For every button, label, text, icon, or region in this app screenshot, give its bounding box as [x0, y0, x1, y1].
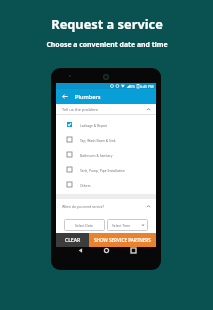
staticText: Select Date	[75, 223, 93, 228]
button[interactable]: Others	[56, 177, 156, 192]
button[interactable]: Tap, Wash Basin & Sink	[56, 132, 156, 147]
button[interactable]: Select Date	[64, 219, 105, 231]
button[interactable]: Tank, Pump, Pipe Installation	[56, 162, 156, 177]
button[interactable]: Tell us the problem	[56, 104, 156, 114]
button[interactable]: Bathroom & Sanitary	[56, 147, 156, 162]
button[interactable]: Recents	[127, 244, 140, 257]
staticText: Request a service	[51, 15, 163, 32]
staticText: Plumbers	[75, 93, 101, 101]
staticText: When do you need service?	[62, 204, 105, 208]
button[interactable]: Leakage & Repair	[56, 117, 156, 132]
staticText: CLEAR	[65, 237, 81, 244]
staticText: Select Time	[112, 223, 131, 228]
staticText: Tap, Wash Basin & Sink	[80, 138, 116, 142]
button[interactable]: Select Time	[107, 219, 148, 231]
staticText: 6:45 PM	[140, 84, 154, 89]
button[interactable]: SHOW SERVICE PARTNERS	[89, 233, 156, 247]
button[interactable]: Back	[74, 244, 87, 257]
staticText: Bathroom & Sanitary	[80, 153, 113, 157]
staticText: Tank, Pump, Pipe Installation	[80, 168, 125, 172]
button[interactable]: CLEAR	[56, 233, 89, 247]
button[interactable]: When do you need service?	[56, 199, 156, 213]
staticText: SHOW SERVICE PARTNERS	[94, 237, 151, 243]
button[interactable]: Back	[56, 89, 156, 104]
other: Back	[62, 94, 68, 99]
staticText: 5%	[130, 84, 136, 89]
staticText: Others	[80, 183, 91, 187]
staticText: Leakage & Repair	[80, 123, 108, 127]
button[interactable]: Home	[100, 244, 113, 257]
staticText: Choose a convenient date and time	[46, 40, 168, 49]
staticText: Tell us the problem	[62, 107, 98, 112]
